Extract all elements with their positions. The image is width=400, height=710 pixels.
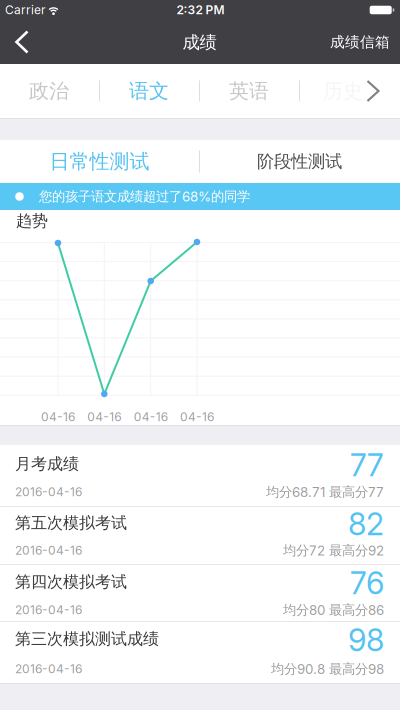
staticText: 政治 bbox=[29, 79, 69, 103]
button[interactable]: More subjects bbox=[356, 64, 390, 118]
staticText: 第三次模拟测试成绩 bbox=[15, 629, 159, 649]
staticText: 第四次模拟考试 bbox=[15, 572, 127, 592]
button[interactable]: 阶段性测试 bbox=[200, 140, 399, 183]
staticText: 日常性测试 bbox=[49, 149, 149, 174]
button[interactable]: 第五次模拟考试 bbox=[0, 507, 400, 565]
button[interactable]: 政治 bbox=[0, 64, 98, 118]
staticText: 均分90.8 最高分98 bbox=[271, 661, 384, 677]
staticText: 98 bbox=[348, 622, 384, 658]
button[interactable]: Back bbox=[0, 20, 39, 64]
button[interactable]: 语文 bbox=[100, 64, 198, 118]
staticText: 04-16 bbox=[134, 410, 168, 424]
staticText: 英语 bbox=[229, 79, 269, 103]
staticText: 您的孩子语文成绩超过了68%的同学 bbox=[39, 188, 250, 205]
staticText: 第五次模拟考试 bbox=[15, 513, 127, 533]
staticText: 月考成绩 bbox=[15, 454, 79, 474]
staticText: 均分72 最高分92 bbox=[283, 542, 384, 559]
staticText: 语文 bbox=[129, 79, 169, 103]
staticText: 趋势 bbox=[16, 211, 48, 231]
button[interactable]: 日常性测试 bbox=[0, 140, 199, 183]
button[interactable]: 英语 bbox=[200, 64, 298, 118]
staticText: 82 bbox=[348, 506, 384, 542]
button[interactable]: 第三次模拟测试成绩 bbox=[0, 622, 400, 683]
staticText: 2016-04-16 bbox=[15, 543, 82, 558]
button[interactable]: 第四次模拟考试 bbox=[0, 565, 400, 622]
staticText: 2016-04-16 bbox=[15, 603, 82, 617]
staticText: 04-16 bbox=[41, 410, 75, 424]
staticText: 2:32 PM bbox=[176, 3, 224, 17]
staticText: 2016-04-16 bbox=[15, 485, 82, 499]
staticText: 04-16 bbox=[180, 410, 214, 424]
staticText: 历史 bbox=[323, 79, 363, 103]
staticText: 成绩信箱 bbox=[330, 33, 390, 51]
staticText: 04-16 bbox=[87, 410, 121, 424]
staticText: 2016-04-16 bbox=[15, 662, 82, 676]
staticText: 阶段性测试 bbox=[257, 151, 342, 172]
staticText: Carrier bbox=[5, 3, 46, 17]
staticText: 均分68.71 最高分77 bbox=[266, 484, 384, 500]
button[interactable]: 月考成绩 bbox=[0, 445, 400, 507]
staticText: 77 bbox=[350, 447, 384, 483]
button[interactable]: 成绩信箱 bbox=[322, 20, 400, 64]
staticText: 均分80 最高分86 bbox=[283, 602, 384, 618]
staticText: 76 bbox=[350, 565, 384, 601]
staticText: 成绩 bbox=[182, 32, 216, 53]
